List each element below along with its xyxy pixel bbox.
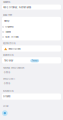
staticText: LOGO xyxy=(3,105,9,108)
staticText: 0 m/s xyxy=(4,82,10,85)
button[interactable]: Logo xyxy=(2,110,8,116)
staticText: 490 E Ordway, Netherlands xyxy=(3,6,31,9)
button[interactable]: Start in road xyxy=(2,35,57,39)
staticText: Ground xyxy=(3,95,10,98)
staticText: AVERAGE SPEED CAMERA xyxy=(3,67,24,69)
staticText: ADDRESS xyxy=(3,1,10,3)
staticText: Restrictions xyxy=(8,48,20,50)
staticText: Start in road xyxy=(5,36,18,38)
staticText: RESTRICTION xyxy=(3,42,16,45)
staticText: DIRECTION xyxy=(3,54,14,57)
staticText: ELEVATION xyxy=(3,90,14,92)
staticText: ROAD TYPE xyxy=(3,14,12,17)
button[interactable]: Tunnel xyxy=(2,30,57,34)
staticText: 0 m/s xyxy=(4,71,10,74)
staticText: Ramp xyxy=(4,20,9,22)
staticText: Two way xyxy=(4,59,13,62)
button[interactable]: Unpaved xyxy=(2,25,57,28)
staticText: SPEED LIMIT xyxy=(3,78,15,80)
staticText: Two way xyxy=(32,60,38,62)
button[interactable]: Two way xyxy=(30,59,39,62)
staticText: Tunnel xyxy=(5,31,11,33)
staticText: Unpaved xyxy=(5,25,13,28)
button[interactable]: Restrictions xyxy=(4,47,59,51)
